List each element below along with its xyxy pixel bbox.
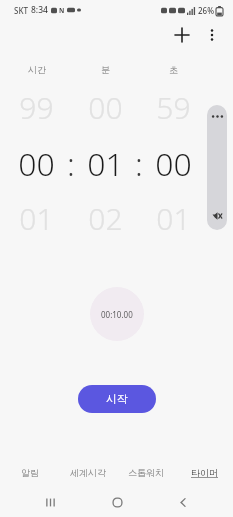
staticText: 스톱워치 (128, 467, 164, 478)
button[interactable]: More options (199, 22, 225, 48)
staticText: 알림 (21, 467, 39, 478)
staticText: 01 (19, 198, 54, 239)
staticText: 분 (101, 64, 110, 75)
button[interactable]: 시작 (78, 385, 156, 413)
button[interactable]: Back (166, 487, 200, 517)
staticText: 시간 (28, 64, 46, 75)
staticText: N (59, 6, 65, 15)
button[interactable]: 타이머 (175, 457, 233, 487)
button[interactable]: 세계시각 (59, 457, 117, 487)
staticText: 01 (87, 142, 124, 186)
staticText: 02 (88, 198, 123, 239)
staticText: 00:10.00 (101, 309, 133, 320)
staticText: 8:34 (31, 4, 48, 16)
staticText: 00 (88, 87, 123, 128)
staticText: : (135, 142, 143, 186)
staticText: 59 (156, 87, 191, 128)
button[interactable]: 00:10.00 (90, 287, 144, 341)
button[interactable]: Recents (33, 487, 67, 517)
button[interactable]: Home (100, 487, 134, 517)
staticText: 초 (169, 64, 178, 75)
button[interactable]: Add timer preset (169, 22, 195, 48)
staticText: 00 (155, 142, 192, 186)
staticText: 시작 (106, 392, 128, 406)
staticText: 00 (18, 142, 55, 186)
button[interactable]: Timer options panel (207, 105, 227, 230)
staticText: 26% (198, 5, 214, 16)
button[interactable]: 알림 (0, 457, 59, 487)
staticText: SKT (14, 5, 28, 16)
staticText: 세계시각 (70, 467, 106, 478)
staticText: 01 (156, 198, 191, 239)
button[interactable]: 스톱워치 (117, 457, 175, 487)
staticText: : (67, 142, 75, 186)
staticText: 타이머 (191, 467, 218, 478)
staticText: 99 (19, 87, 54, 128)
